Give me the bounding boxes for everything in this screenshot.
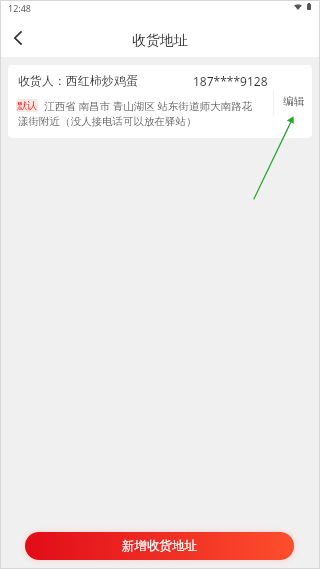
staticText: 收货地址 xyxy=(132,32,188,50)
staticText: 编辑 xyxy=(283,95,305,109)
staticText: 江西省 南昌市 青山湖区 站东街道师大南路花漾街附近（没人接电话可以放在驿站） xyxy=(18,99,254,129)
staticText: 默认 xyxy=(17,99,37,112)
staticText: 收货人：西红柿炒鸡蛋 xyxy=(18,73,138,88)
button[interactable]: 新增收货地址 xyxy=(25,532,294,560)
button[interactable]: Back xyxy=(6,26,30,50)
staticText: 12:48 xyxy=(8,2,32,14)
button[interactable]: 收货人：西红柿炒鸡蛋 xyxy=(8,65,312,138)
staticText: 新增收货地址 xyxy=(122,538,197,554)
button[interactable]: 编辑 xyxy=(274,65,312,138)
staticText: 187****9128 xyxy=(193,73,268,89)
